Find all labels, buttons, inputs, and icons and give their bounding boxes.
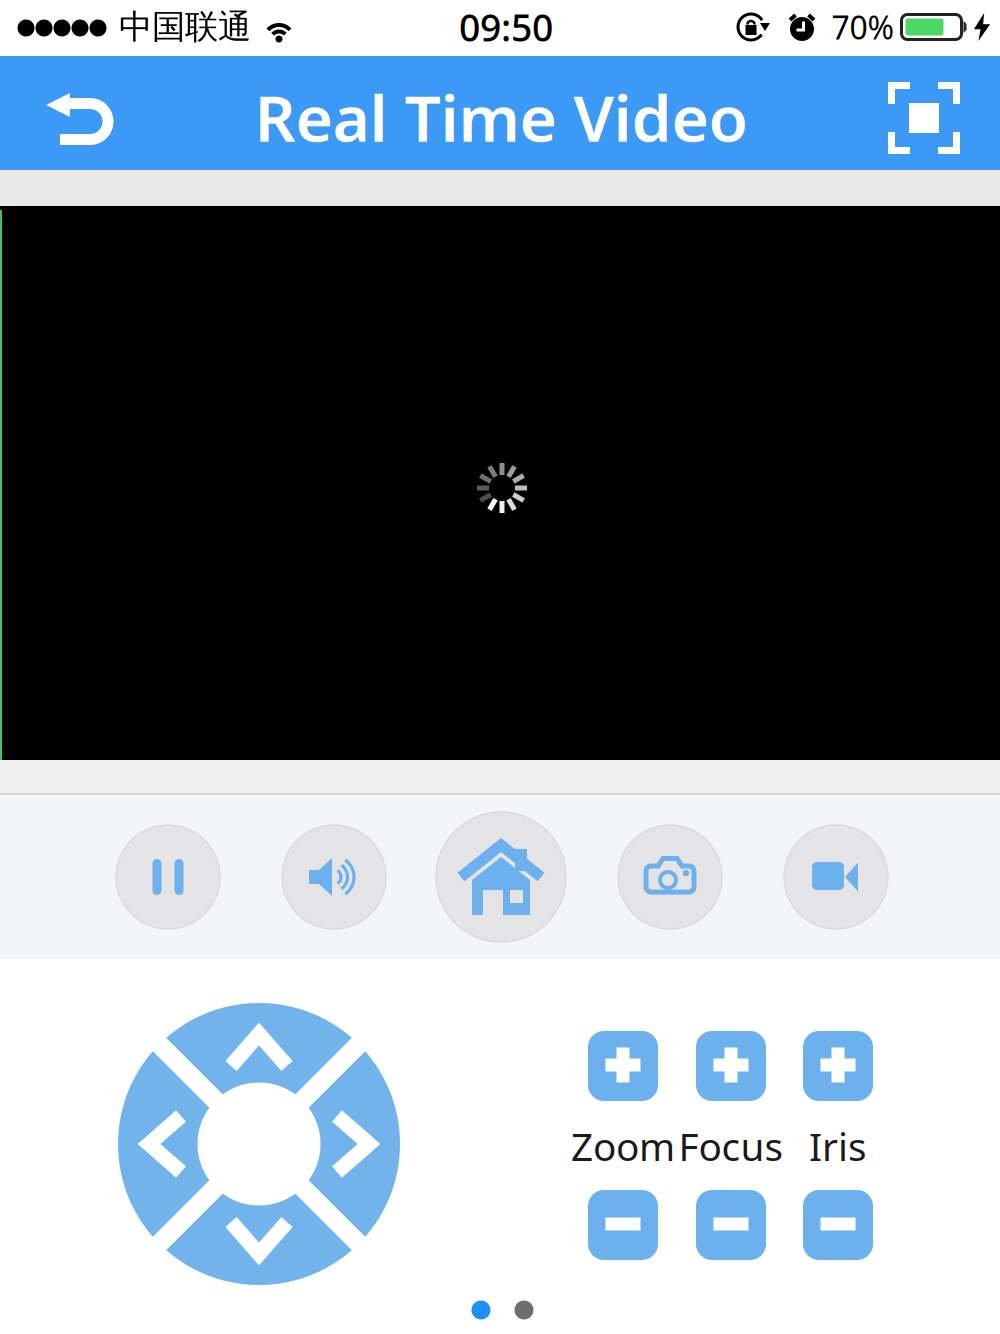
button[interactable]: Home (436, 812, 566, 942)
button[interactable]: Focus out (696, 1190, 766, 1260)
staticText: Zoom (571, 1120, 675, 1172)
button[interactable]: Snapshot (618, 825, 722, 929)
button[interactable]: Zoom in (588, 1031, 658, 1101)
button[interactable]: Zoom out (588, 1190, 658, 1260)
button[interactable]: Iris in (803, 1031, 873, 1101)
staticText: Iris (809, 1120, 867, 1172)
button[interactable]: Direction pad (118, 1003, 400, 1285)
staticText: Focus (678, 1120, 783, 1172)
button[interactable]: Iris out (803, 1190, 873, 1260)
button[interactable]: Focus in (696, 1031, 766, 1101)
button[interactable]: Back (24, 61, 132, 175)
staticText: 09:50 (459, 2, 553, 52)
staticText: 中国联通 (119, 6, 251, 47)
button[interactable]: Audio (282, 825, 386, 929)
button[interactable]: Full screen (870, 61, 978, 175)
staticText: 70% (831, 6, 894, 48)
button[interactable]: Record (784, 825, 888, 929)
button[interactable]: Pause (116, 825, 220, 929)
staticText: Real Time Video (254, 74, 747, 159)
